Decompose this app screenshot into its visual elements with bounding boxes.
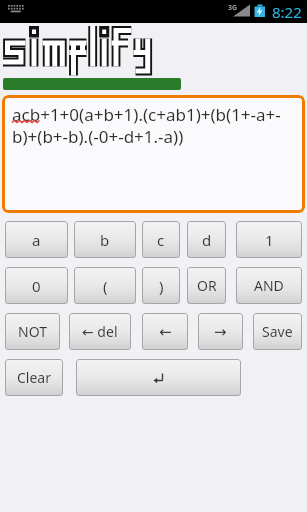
button[interactable]: b [74, 221, 136, 258]
staticText: 8:22 [272, 2, 302, 22]
staticText: d [202, 230, 212, 250]
staticText: AND [254, 276, 284, 295]
staticText: Save [262, 322, 293, 341]
button[interactable]: Clear [5, 359, 63, 396]
button[interactable]: ← [142, 313, 188, 350]
button[interactable]: ) [142, 267, 180, 304]
staticText: a [32, 230, 41, 250]
staticText: ( [103, 276, 108, 296]
button[interactable]: OR [187, 267, 226, 304]
staticText: acb+1+0(a+b+1).(c+ab1)+(b(1+-a+- [12, 103, 281, 126]
staticText: b)+(b+-b).(-0+-d+1.-a)) [12, 125, 184, 148]
staticText: NOT [18, 322, 47, 341]
button[interactable] [2, 95, 305, 213]
staticText: Clear [17, 368, 51, 387]
button[interactable] [76, 359, 241, 396]
staticText: 1 [265, 230, 274, 250]
button[interactable]: c [142, 221, 180, 258]
staticText: ← del [82, 322, 118, 341]
staticText: b [100, 230, 110, 250]
staticText: c [157, 230, 165, 250]
button[interactable]: ( [74, 267, 136, 304]
button[interactable]: 0 [5, 267, 68, 304]
staticText: ) [159, 276, 164, 296]
button[interactable]: 1 [236, 221, 302, 258]
staticText: OR [197, 276, 217, 295]
button[interactable]: AND [236, 267, 302, 304]
staticText: 0 [32, 276, 41, 296]
staticText: 3G [228, 3, 238, 13]
button[interactable]: d [187, 221, 226, 258]
button[interactable]: Save [253, 313, 302, 350]
button[interactable]: ← del [69, 313, 131, 350]
button[interactable]: → [198, 313, 243, 350]
staticText: → [214, 323, 227, 340]
staticText: ← [159, 323, 172, 340]
button[interactable]: NOT [5, 313, 60, 350]
button[interactable]: a [5, 221, 68, 258]
